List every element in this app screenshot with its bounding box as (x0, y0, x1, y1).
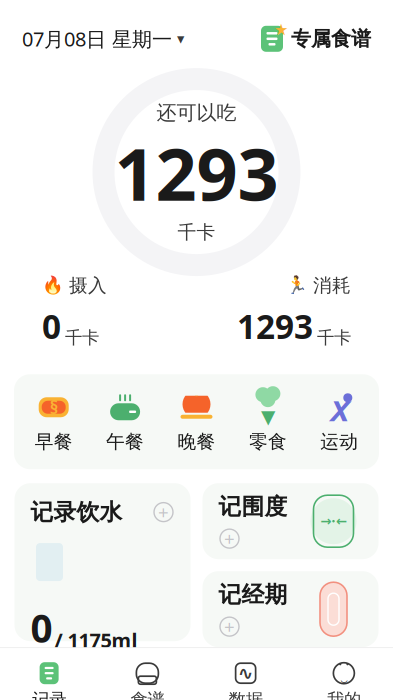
staticText: 午餐 (106, 430, 144, 453)
button[interactable]: ∿ (196, 654, 295, 700)
staticText: 我的 (327, 689, 361, 700)
staticText: 0 (42, 304, 61, 348)
button[interactable]: 食谱 (98, 654, 196, 700)
staticText: 记录 (32, 689, 66, 700)
staticText: 摄入 (69, 274, 107, 297)
staticText: 运动 (320, 430, 358, 453)
staticText: 还可以吃 (156, 100, 236, 125)
staticText: 数据 (229, 689, 263, 700)
button[interactable]: 记录饮水 (14, 483, 190, 641)
staticText: 千卡 (65, 327, 99, 348)
staticText: / 1175ml (54, 627, 137, 653)
staticText: § (50, 396, 58, 419)
staticText: 食谱 (130, 689, 164, 700)
staticText: 早餐 (35, 430, 73, 453)
staticText: 零食 (249, 430, 287, 453)
staticText: 专属食谱 (291, 26, 371, 51)
staticText: ‿ (340, 667, 347, 683)
staticText: ∿ (238, 663, 254, 684)
staticText: 千卡 (317, 327, 351, 348)
button[interactable]: 午餐 (89, 386, 161, 457)
staticText: 千卡 (177, 221, 215, 244)
button[interactable]: § (18, 386, 89, 457)
staticText: 1293 (114, 125, 278, 221)
staticText: 0 (30, 602, 52, 653)
staticText: 1293 (237, 304, 313, 348)
staticText: 记录饮水 (30, 498, 122, 526)
button[interactable]: 07月08日 星期一 (22, 19, 184, 58)
staticText: 晚餐 (177, 430, 215, 453)
staticText: ★ (274, 21, 288, 39)
button[interactable]: 𝑥 (304, 386, 375, 457)
button[interactable]: ‿ (295, 654, 393, 700)
staticText: 记围度 (218, 493, 287, 521)
button[interactable]: 晚餐 (161, 386, 232, 457)
staticText: 07月08日 星期一 (22, 25, 172, 52)
staticText: 消耗 (313, 274, 351, 297)
staticText: → (320, 514, 331, 529)
staticText: ▼ (261, 406, 275, 427)
staticText: + (224, 614, 235, 639)
staticText: 𝑥 (330, 393, 349, 427)
button[interactable]: ▼ (232, 386, 304, 457)
staticText: 🔥 (42, 276, 64, 295)
staticText: + (158, 500, 169, 524)
staticText: 🏃 (286, 276, 308, 295)
staticText: ▾ (177, 30, 184, 47)
button[interactable]: 记录 (0, 654, 98, 700)
button[interactable]: ★ (257, 24, 371, 54)
button[interactable]: 记围度 (202, 483, 378, 559)
button[interactable]: 记经期 (202, 571, 378, 647)
staticText: 记经期 (218, 581, 287, 609)
staticText: ← (336, 514, 347, 529)
staticText: + (224, 526, 235, 551)
